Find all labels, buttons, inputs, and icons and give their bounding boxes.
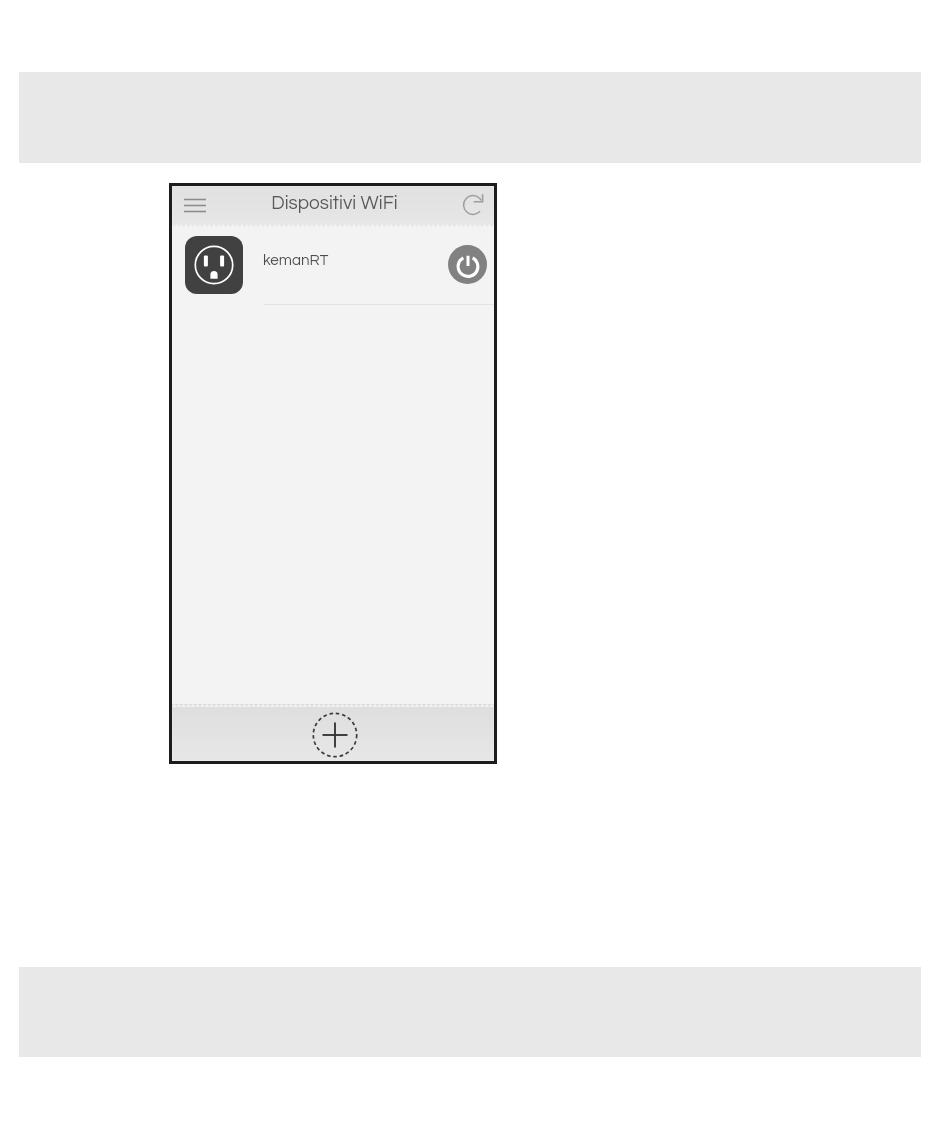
button[interactable]: Menu	[180, 190, 210, 220]
staticText: Dispositivi WiFi	[271, 193, 398, 213]
button[interactable]: Add device	[311, 711, 359, 759]
button[interactable]: Power toggle	[448, 245, 487, 284]
staticText: kemanRT	[263, 253, 329, 269]
button[interactable]: kemanRT	[172, 227, 494, 305]
button[interactable]: Refresh	[460, 192, 486, 218]
